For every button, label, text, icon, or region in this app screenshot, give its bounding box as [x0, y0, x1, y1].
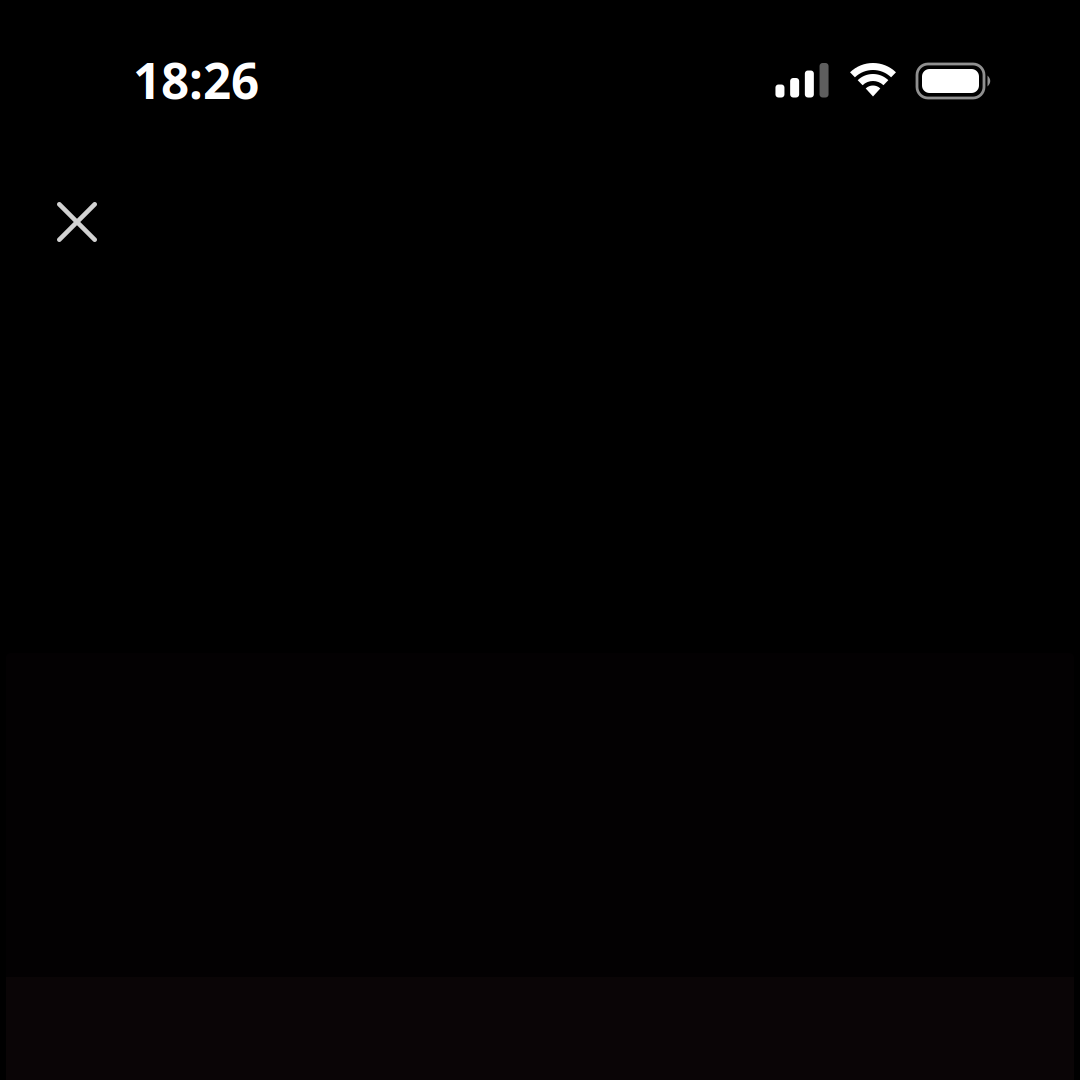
button[interactable]: Close	[31, 176, 123, 268]
staticText: 18:26	[133, 47, 259, 112]
